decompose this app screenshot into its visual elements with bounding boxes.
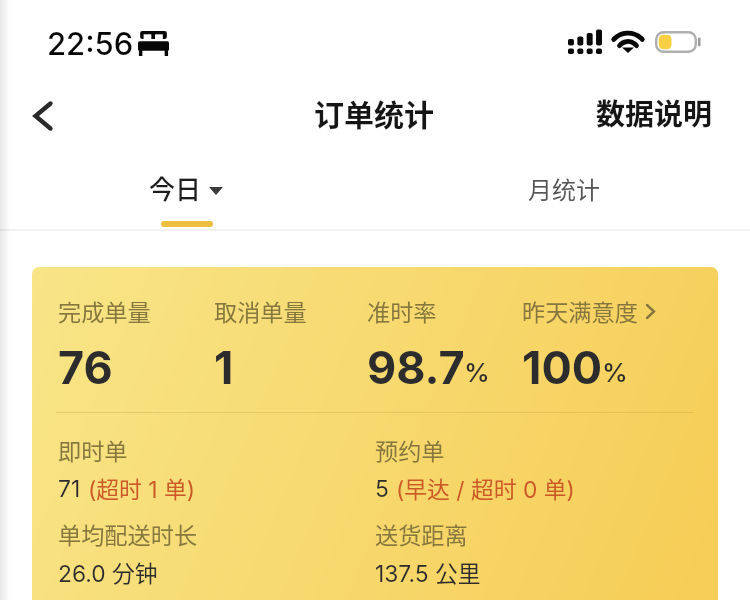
staticText: 单均配送时长 <box>58 517 198 551</box>
staticText: 完成单量 <box>58 294 151 328</box>
staticText: 订单统计 <box>314 91 434 134</box>
staticText: 1 <box>214 340 234 394</box>
staticText: 即时单 <box>58 433 128 467</box>
staticText: 137.5 公里 <box>375 556 481 589</box>
staticText: (超时 1 单) <box>88 472 196 505</box>
button[interactable]: Back <box>14 88 72 144</box>
staticText: 送货距离 <box>375 517 468 551</box>
staticText: 数据说明 <box>596 91 713 133</box>
staticText: % <box>602 357 628 388</box>
staticText: 今日 <box>149 169 202 207</box>
staticText: 昨天满意度 <box>522 294 638 328</box>
staticText: 取消单量 <box>214 294 307 328</box>
button[interactable]: 今日 <box>149 169 223 207</box>
staticText: 22:56 <box>47 25 134 63</box>
staticText: 98.7 <box>367 340 465 394</box>
button[interactable]: 数据说明 <box>596 91 713 133</box>
staticText: 71 <box>58 475 81 503</box>
button[interactable]: 完成单量 <box>32 267 718 600</box>
staticText: % <box>464 357 490 388</box>
staticText: 月统计 <box>528 171 600 206</box>
staticText: 准时率 <box>367 294 437 328</box>
button[interactable]: 月统计 <box>528 171 600 206</box>
staticText: 76 <box>58 340 113 394</box>
staticText: 100 <box>522 340 603 394</box>
staticText: 预约单 <box>375 433 445 467</box>
staticText: 5 <box>375 475 389 503</box>
staticText: (早达 / 超时 0 单) <box>396 472 575 505</box>
staticText: 26.0 分钟 <box>58 556 158 589</box>
